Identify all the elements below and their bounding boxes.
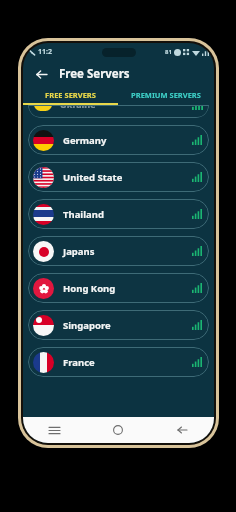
button[interactable]: Japans bbox=[28, 236, 209, 266]
staticText: Germany bbox=[63, 134, 107, 147]
button[interactable]: Back bbox=[31, 64, 51, 84]
button[interactable]: Thailand bbox=[28, 199, 209, 229]
staticText: 11:2 bbox=[38, 47, 52, 57]
button[interactable]: Germany bbox=[28, 125, 209, 155]
staticText: Ukraine bbox=[60, 105, 96, 110]
button[interactable]: United State bbox=[28, 162, 209, 192]
staticText: FREE SERVERS bbox=[45, 90, 96, 100]
staticText: Japans bbox=[63, 245, 95, 258]
button[interactable]: France bbox=[28, 347, 209, 377]
button[interactable]: Home bbox=[86, 417, 150, 443]
button[interactable]: Recent apps bbox=[23, 417, 86, 443]
button[interactable]: Singapore bbox=[28, 310, 209, 340]
staticText: France bbox=[63, 356, 95, 369]
staticText: Free Servers bbox=[59, 66, 130, 82]
button[interactable]: Ukraine bbox=[28, 105, 209, 118]
button[interactable]: Hong Kong bbox=[28, 273, 209, 303]
button[interactable]: FREE SERVERS bbox=[23, 87, 118, 103]
staticText: 81 bbox=[165, 48, 172, 56]
staticText: Hong Kong bbox=[63, 282, 116, 295]
staticText: United State bbox=[63, 171, 123, 184]
staticText: PREMIUM SERVERS bbox=[131, 90, 201, 100]
staticText: Singapore bbox=[63, 319, 111, 332]
button[interactable]: Back bbox=[150, 417, 214, 443]
button[interactable]: PREMIUM SERVERS bbox=[118, 87, 214, 103]
staticText: Thailand bbox=[63, 208, 104, 221]
